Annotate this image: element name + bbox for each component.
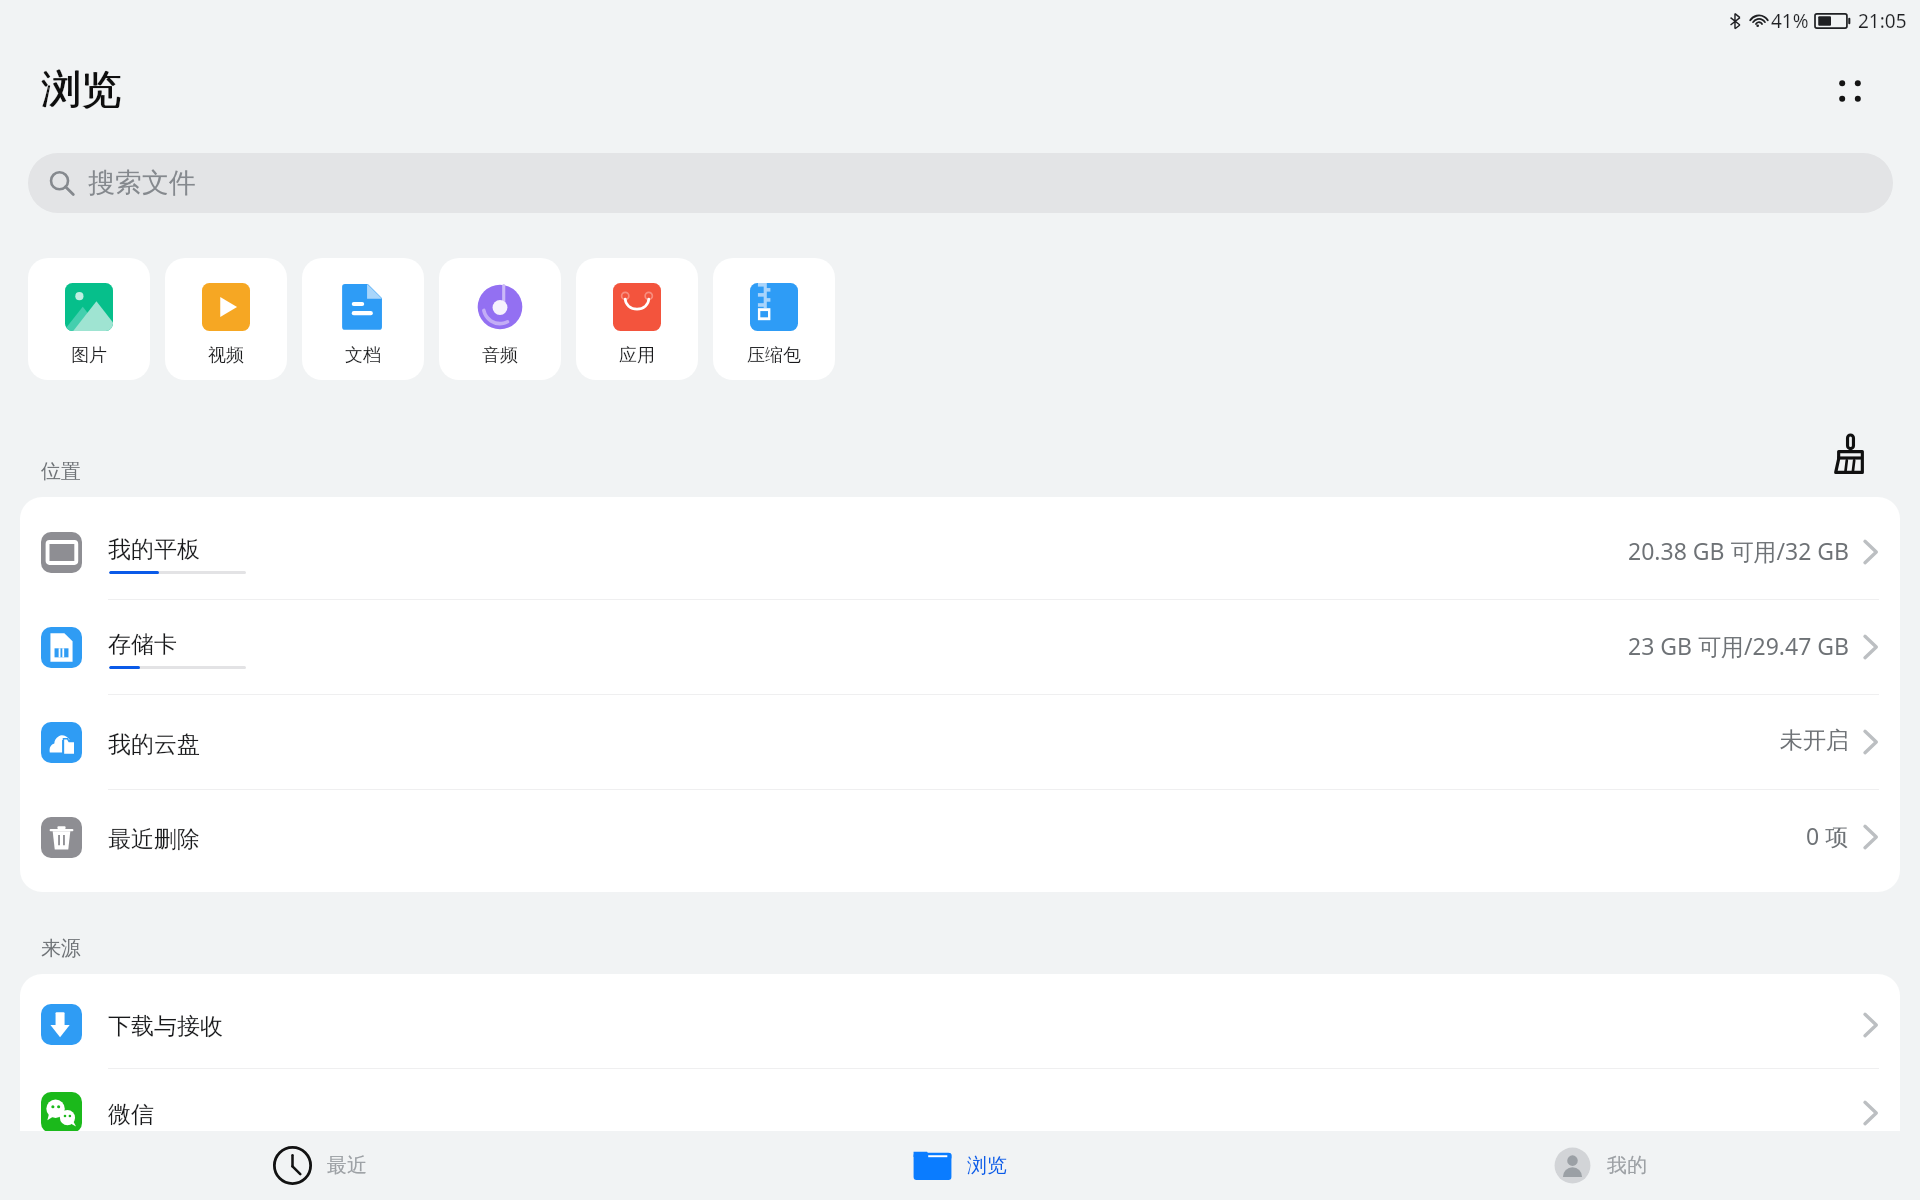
button[interactable]: More options [1822, 63, 1878, 119]
button[interactable]: 图片 [28, 258, 150, 380]
button[interactable]: 应用 [576, 258, 698, 380]
staticText: 最近 [327, 1153, 367, 1178]
staticText: 41% [1771, 8, 1809, 34]
staticText: 图片 [71, 344, 107, 367]
button[interactable]: 我的云盘 [20, 695, 1900, 789]
button[interactable]: 文档 [302, 258, 424, 380]
staticText: 浏览 [42, 64, 122, 114]
staticText: 最近删除 [108, 825, 200, 854]
staticText: 搜索文件 [88, 166, 196, 200]
staticText: 位置 [41, 459, 81, 484]
button[interactable]: 浏览 [640, 1131, 1280, 1200]
staticText: 下载与接收 [108, 1012, 223, 1041]
staticText: 0 项 [1806, 820, 1849, 851]
staticText: 应用 [619, 344, 655, 367]
staticText: 来源 [41, 936, 81, 961]
staticText: 文档 [345, 344, 381, 367]
button[interactable]: 存储卡 [20, 600, 1900, 694]
button[interactable]: 搜索文件 [28, 153, 1893, 213]
staticText: 音频 [482, 344, 518, 367]
button[interactable]: 我的 [1280, 1131, 1920, 1200]
staticText: 我的 [1607, 1153, 1647, 1178]
staticText: 未开启 [1780, 726, 1849, 755]
staticText: 存储卡 [108, 630, 177, 659]
staticText: 我的平板 [108, 535, 200, 564]
staticText: 23 GB 可用/29.47 GB [1628, 630, 1849, 661]
staticText: 视频 [208, 344, 244, 367]
button[interactable]: 最近删除 [20, 790, 1900, 884]
button[interactable]: 我的平板 [20, 505, 1900, 599]
button[interactable]: 音频 [439, 258, 561, 380]
button[interactable]: 最近 [0, 1131, 640, 1200]
staticText: 浏览 [41, 64, 121, 114]
button[interactable]: 下载与接收 [20, 981, 1900, 1068]
staticText: 压缩包 [747, 344, 801, 367]
button[interactable]: 微信 [20, 1069, 1900, 1156]
staticText: 微信 [108, 1100, 154, 1129]
staticText: 我的云盘 [108, 730, 200, 759]
staticText: 21:05 [1858, 8, 1907, 34]
staticText: 浏览 [967, 1153, 1007, 1178]
button[interactable]: 压缩包 [713, 258, 835, 380]
button[interactable]: Clean up [1822, 426, 1878, 482]
button[interactable]: 视频 [165, 258, 287, 380]
staticText: 20.38 GB 可用/32 GB [1628, 535, 1849, 566]
